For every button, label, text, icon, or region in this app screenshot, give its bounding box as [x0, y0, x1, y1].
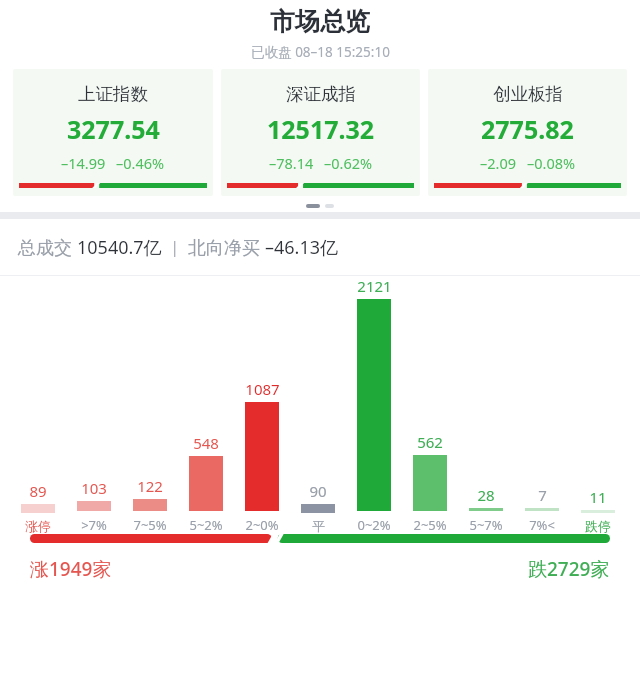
staticText: 平: [312, 518, 325, 534]
staticText: –46.13亿: [265, 235, 339, 260]
staticText: 已收盘 08–18 15:25:10: [251, 43, 390, 61]
staticText: 7%<: [529, 516, 555, 534]
staticText: 上证指数: [78, 83, 148, 105]
staticText: –0.62%: [324, 153, 373, 173]
staticText: 28: [477, 485, 495, 505]
button[interactable]: 深证成指: [221, 69, 420, 196]
staticText: 跌2729家: [528, 556, 610, 582]
staticText: 10540.7亿: [77, 235, 162, 260]
staticText: 103: [81, 478, 107, 498]
button[interactable]: 总成交: [0, 219, 640, 275]
staticText: 跌停: [585, 518, 611, 534]
staticText: 涨1949家: [30, 556, 112, 582]
staticText: 总成交: [18, 235, 77, 260]
staticText: 7: [538, 485, 547, 505]
staticText: 89: [29, 481, 47, 501]
staticText: 3277.54: [67, 112, 160, 146]
staticText: 548: [193, 433, 219, 453]
staticText: 7~5%: [133, 516, 167, 534]
staticText: 2~5%: [413, 516, 447, 534]
staticText: 2121: [357, 276, 392, 296]
staticText: –0.46%: [116, 153, 165, 173]
staticText: 12517.32: [267, 112, 375, 146]
staticText: 创业板指: [493, 83, 563, 105]
staticText: 2775.82: [481, 112, 574, 146]
staticText: 5~7%: [469, 516, 503, 534]
staticText: –14.99: [61, 153, 106, 173]
staticText: 11: [589, 487, 607, 507]
staticText: 深证成指: [286, 83, 356, 105]
staticText: 2~0%: [245, 516, 279, 534]
staticText: 90: [309, 481, 327, 501]
staticText: 5~2%: [189, 516, 223, 534]
button[interactable]: 创业板指: [428, 69, 627, 196]
staticText: 0~2%: [357, 516, 391, 534]
staticText: >7%: [81, 516, 107, 534]
staticText: 北向净买: [188, 235, 265, 260]
button[interactable]: 上证指数: [13, 69, 213, 196]
staticText: 1087: [245, 379, 280, 399]
staticText: 市场总览: [270, 6, 370, 37]
staticText: 涨停: [25, 518, 51, 534]
staticText: –0.08%: [527, 153, 576, 173]
staticText: 122: [137, 476, 163, 496]
staticText: |: [162, 236, 188, 258]
staticText: 562: [417, 432, 443, 452]
staticText: –2.09: [480, 153, 517, 173]
staticText: –78.14: [269, 153, 314, 173]
